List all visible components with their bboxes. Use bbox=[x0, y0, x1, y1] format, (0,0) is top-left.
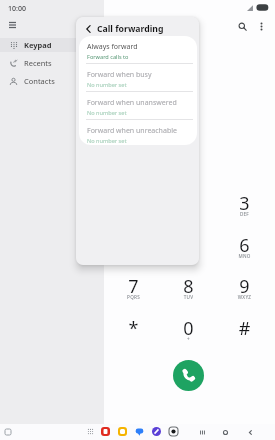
staticText: 0 bbox=[161, 316, 216, 341]
button[interactable]: 2 bbox=[161, 187, 216, 229]
staticText: MNO bbox=[217, 253, 272, 259]
button[interactable]: Call bbox=[173, 360, 204, 391]
staticText: Recents bbox=[24, 58, 52, 68]
button[interactable]: 0 bbox=[161, 312, 216, 354]
button[interactable]: More options bbox=[253, 18, 269, 34]
staticText: 8 bbox=[161, 274, 216, 299]
staticText: JKL bbox=[161, 253, 216, 259]
button[interactable]: # bbox=[217, 312, 272, 354]
button[interactable]: 7 bbox=[106, 270, 161, 312]
staticText: TUV bbox=[161, 294, 216, 300]
staticText: + bbox=[161, 336, 216, 342]
button[interactable]: Contacts bbox=[0, 74, 86, 88]
button[interactable]: Back bbox=[82, 23, 94, 35]
button[interactable]: 4 bbox=[106, 229, 161, 271]
staticText: 3 bbox=[217, 191, 272, 216]
staticText: Call forwarding bbox=[97, 23, 164, 35]
button[interactable]: All apps bbox=[84, 425, 96, 437]
staticText: No number set bbox=[87, 109, 127, 117]
staticText: * bbox=[106, 316, 161, 341]
button[interactable]: * bbox=[106, 312, 161, 354]
button[interactable]: Forward when busy bbox=[79, 64, 197, 91]
button[interactable]: Menu bbox=[4, 16, 21, 33]
button[interactable]: 9 bbox=[217, 270, 272, 312]
staticText: # bbox=[217, 316, 272, 341]
staticText: Keypad bbox=[24, 40, 52, 50]
button[interactable]: App bbox=[167, 425, 179, 437]
button[interactable]: Forward when unreachable bbox=[79, 120, 197, 145]
staticText: 6 bbox=[217, 233, 272, 258]
button[interactable]: Search bbox=[234, 18, 250, 34]
button[interactable]: Forward when unanswered bbox=[79, 92, 197, 119]
staticText: Contacts bbox=[24, 76, 55, 86]
button[interactable]: 3 bbox=[217, 187, 272, 229]
button[interactable]: Always forward bbox=[79, 36, 197, 63]
staticText: 9 bbox=[217, 274, 272, 299]
staticText: 10:00 bbox=[8, 4, 26, 14]
button[interactable]: App bbox=[116, 425, 128, 437]
button[interactable]: App bbox=[133, 425, 145, 437]
staticText: DEF bbox=[217, 211, 272, 217]
staticText: No number set bbox=[87, 137, 127, 145]
staticText: PQRS bbox=[106, 294, 161, 300]
button[interactable]: 8 bbox=[161, 270, 216, 312]
staticText: Forward calls to bbox=[87, 53, 129, 61]
button[interactable]: Recent apps bbox=[195, 425, 209, 439]
staticText: Always forward bbox=[87, 42, 138, 52]
staticText: WXYZ bbox=[217, 294, 272, 300]
staticText: No number set bbox=[87, 81, 127, 89]
button[interactable]: App bbox=[99, 425, 111, 437]
staticText: 5 bbox=[161, 233, 216, 258]
button[interactable]: Clock bbox=[1, 425, 14, 438]
staticText: 7 bbox=[106, 274, 161, 299]
button[interactable]: Back bbox=[243, 425, 257, 439]
staticText: 2 bbox=[161, 191, 216, 216]
button[interactable]: Keypad bbox=[0, 38, 86, 52]
button[interactable]: 5 bbox=[161, 229, 216, 271]
button[interactable]: Home bbox=[218, 425, 232, 439]
staticText: ABC bbox=[161, 211, 216, 217]
staticText: Forward when unreachable bbox=[87, 126, 177, 136]
staticText: Forward when busy bbox=[87, 70, 152, 80]
button[interactable]: Recents bbox=[0, 56, 86, 70]
button[interactable]: App bbox=[150, 425, 162, 437]
button[interactable]: 6 bbox=[217, 229, 272, 271]
staticText: Forward when unanswered bbox=[87, 98, 177, 108]
